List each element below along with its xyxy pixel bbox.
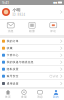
- button[interactable]: 账号安全: [0, 73, 64, 80]
- button[interactable]: 消息: [0, 20, 21, 35]
- staticText: 首页: [5, 95, 11, 99]
- staticText: 已认证: [50, 75, 59, 78]
- staticText: 隐私设置: [7, 68, 19, 71]
- staticText: 卡券中心: [7, 54, 19, 57]
- staticText: 账号安全: [7, 75, 19, 78]
- staticText: 我的: [53, 95, 59, 99]
- staticText: 消息: [37, 95, 43, 99]
- button[interactable]: 发现: [16, 88, 32, 100]
- button[interactable]: 小明: [0, 5, 64, 19]
- staticText: 评论: [50, 29, 56, 33]
- button[interactable]: 卡券中心: [0, 52, 64, 59]
- button[interactable]: 通用设置: [0, 80, 64, 87]
- staticText: 通用设置: [7, 82, 19, 85]
- staticText: ID: 8824: [12, 13, 25, 16]
- button[interactable]: 消息: [32, 88, 48, 100]
- button[interactable]: 我的快递与物流信息: [0, 59, 64, 66]
- button[interactable]: 我的订单: [0, 38, 64, 45]
- staticText: 收藏: [7, 47, 13, 50]
- staticText: 9:41: [2, 0, 9, 5]
- button[interactable]: 首页: [0, 88, 16, 100]
- staticText: ●●: [53, 1, 57, 4]
- button[interactable]: 评论: [43, 20, 64, 35]
- staticText: 相册: [29, 29, 35, 33]
- staticText: 我的快递与物流信息: [7, 61, 34, 64]
- button[interactable]: 收藏: [0, 45, 64, 52]
- button[interactable]: 隐私设置: [0, 66, 64, 73]
- staticText: 发现: [21, 95, 27, 99]
- staticText: 小明: [12, 7, 20, 12]
- staticText: 我的订单: [7, 40, 19, 43]
- button[interactable]: 相册: [21, 20, 43, 35]
- staticText: 消息: [8, 29, 14, 33]
- button[interactable]: 我的: [48, 88, 64, 100]
